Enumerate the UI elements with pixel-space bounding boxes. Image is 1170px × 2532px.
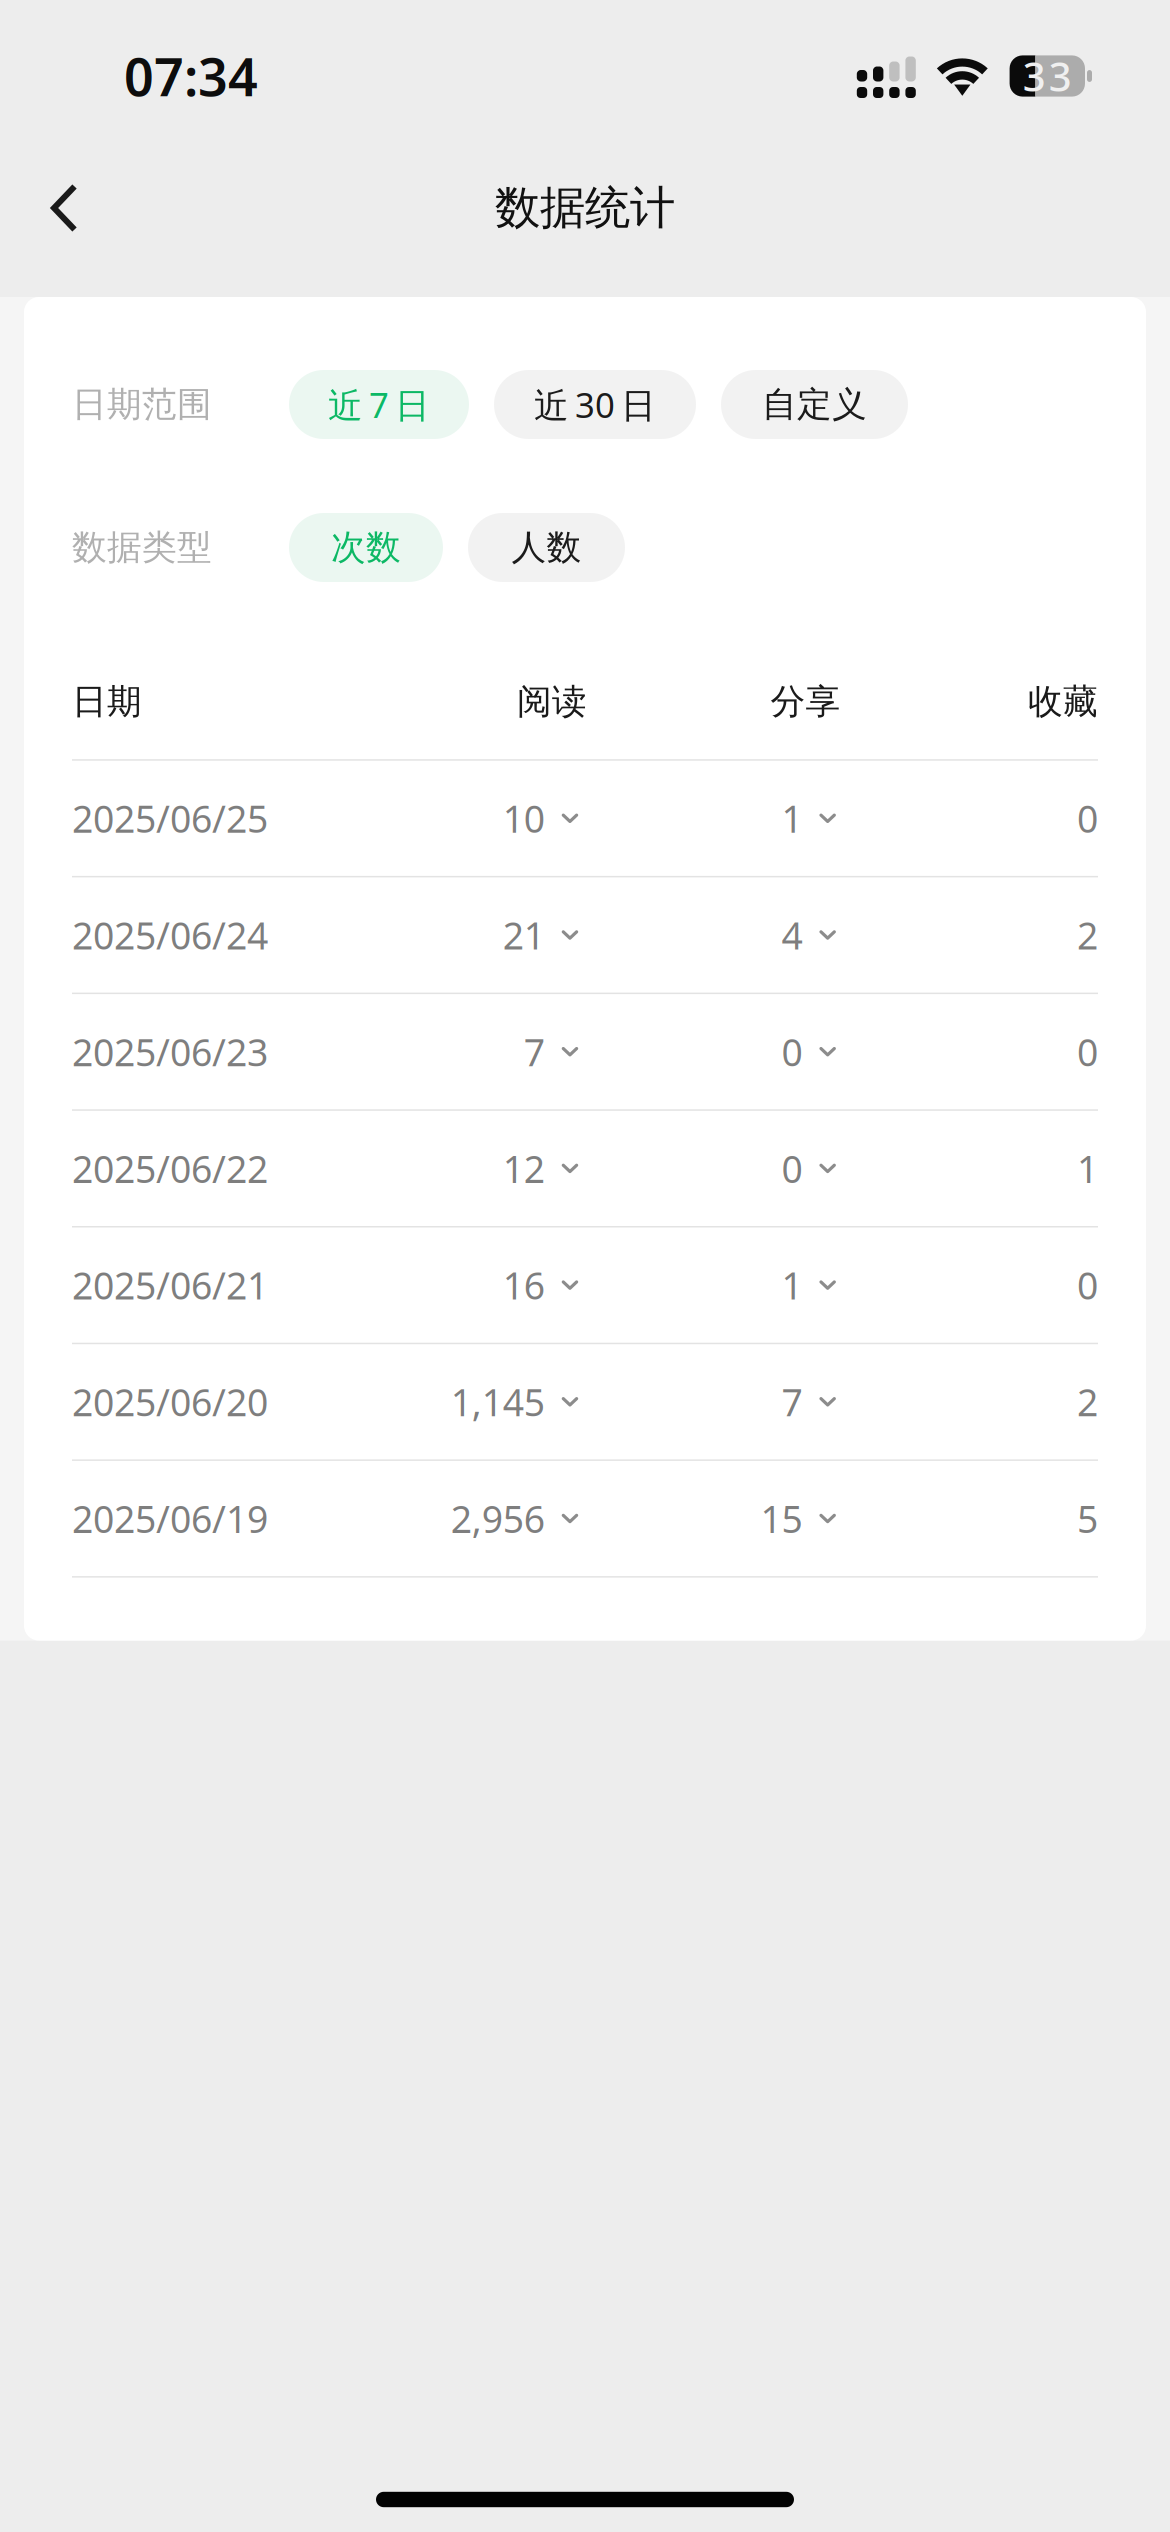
staticText: 2025/06/21 bbox=[72, 1260, 268, 1310]
button[interactable]: 1 bbox=[658, 1227, 836, 1343]
staticText: 2,956 bbox=[451, 1494, 545, 1543]
staticText: 2025/06/19 bbox=[72, 1494, 268, 1543]
button[interactable]: 15 bbox=[658, 1461, 836, 1576]
staticText: 1 bbox=[781, 1260, 802, 1310]
staticText: 收藏 bbox=[1028, 680, 1098, 723]
button[interactable]: 0 bbox=[658, 1111, 836, 1226]
staticText: 2025/06/24 bbox=[72, 910, 268, 960]
button[interactable]: Back bbox=[0, 152, 103, 264]
staticText: 16 bbox=[503, 1260, 545, 1310]
button[interactable]: 2,956 bbox=[392, 1461, 578, 1576]
staticText: 人数 bbox=[511, 526, 581, 569]
staticText: 2025/06/22 bbox=[72, 1144, 268, 1193]
staticText: 12 bbox=[503, 1144, 545, 1193]
staticText: 7 bbox=[781, 1377, 802, 1427]
staticText: 近 30 日 bbox=[534, 381, 656, 427]
staticText: 10 bbox=[503, 793, 545, 843]
staticText: 2 bbox=[1077, 910, 1098, 960]
staticText: 5 bbox=[1077, 1494, 1098, 1543]
button[interactable]: 自定义 bbox=[721, 370, 908, 439]
staticText: 次数 bbox=[331, 526, 401, 569]
staticText: 2025/06/25 bbox=[72, 793, 268, 843]
staticText: 日期范围 bbox=[72, 383, 212, 426]
button[interactable]: 7 bbox=[392, 994, 578, 1109]
staticText: 0 bbox=[781, 1144, 802, 1193]
staticText: 阅读 bbox=[517, 680, 587, 723]
button[interactable]: 12 bbox=[392, 1111, 578, 1226]
staticText: 分享 bbox=[770, 680, 840, 723]
button[interactable]: 近 30 日 bbox=[494, 370, 696, 439]
staticText: 15 bbox=[760, 1494, 802, 1543]
button[interactable]: 次数 bbox=[289, 513, 443, 582]
staticText: 7 bbox=[524, 1027, 545, 1076]
staticText: 0 bbox=[781, 1027, 802, 1076]
staticText: 自定义 bbox=[762, 383, 867, 426]
staticText: 1 bbox=[781, 793, 802, 843]
button[interactable]: 1 bbox=[658, 761, 836, 876]
staticText: 33 bbox=[1023, 49, 1072, 102]
staticText: 近 7 日 bbox=[328, 381, 430, 427]
staticText: 数据统计 bbox=[495, 180, 675, 236]
staticText: 2025/06/23 bbox=[72, 1027, 268, 1076]
staticText: 0 bbox=[1077, 1027, 1098, 1076]
staticText: 1 bbox=[1077, 1144, 1098, 1193]
button[interactable]: 近 7 日 bbox=[289, 370, 469, 439]
staticText: 21 bbox=[503, 910, 545, 960]
button[interactable]: 16 bbox=[392, 1227, 578, 1343]
button[interactable]: 7 bbox=[658, 1344, 836, 1459]
staticText: 07:34 bbox=[124, 41, 258, 111]
staticText: 4 bbox=[781, 910, 802, 960]
button[interactable]: 0 bbox=[658, 994, 836, 1109]
staticText: 2025/06/20 bbox=[72, 1377, 268, 1427]
staticText: 1,145 bbox=[451, 1377, 545, 1427]
button[interactable]: 1,145 bbox=[392, 1344, 578, 1459]
staticText: 数据类型 bbox=[72, 526, 212, 569]
button[interactable]: 4 bbox=[658, 877, 836, 993]
button[interactable]: 21 bbox=[392, 877, 578, 993]
staticText: 0 bbox=[1077, 793, 1098, 843]
staticText: 2 bbox=[1077, 1377, 1098, 1427]
button[interactable]: 人数 bbox=[468, 513, 625, 582]
staticText: 0 bbox=[1077, 1260, 1098, 1310]
button[interactable]: 10 bbox=[392, 761, 578, 876]
staticText: 日期 bbox=[72, 680, 142, 723]
